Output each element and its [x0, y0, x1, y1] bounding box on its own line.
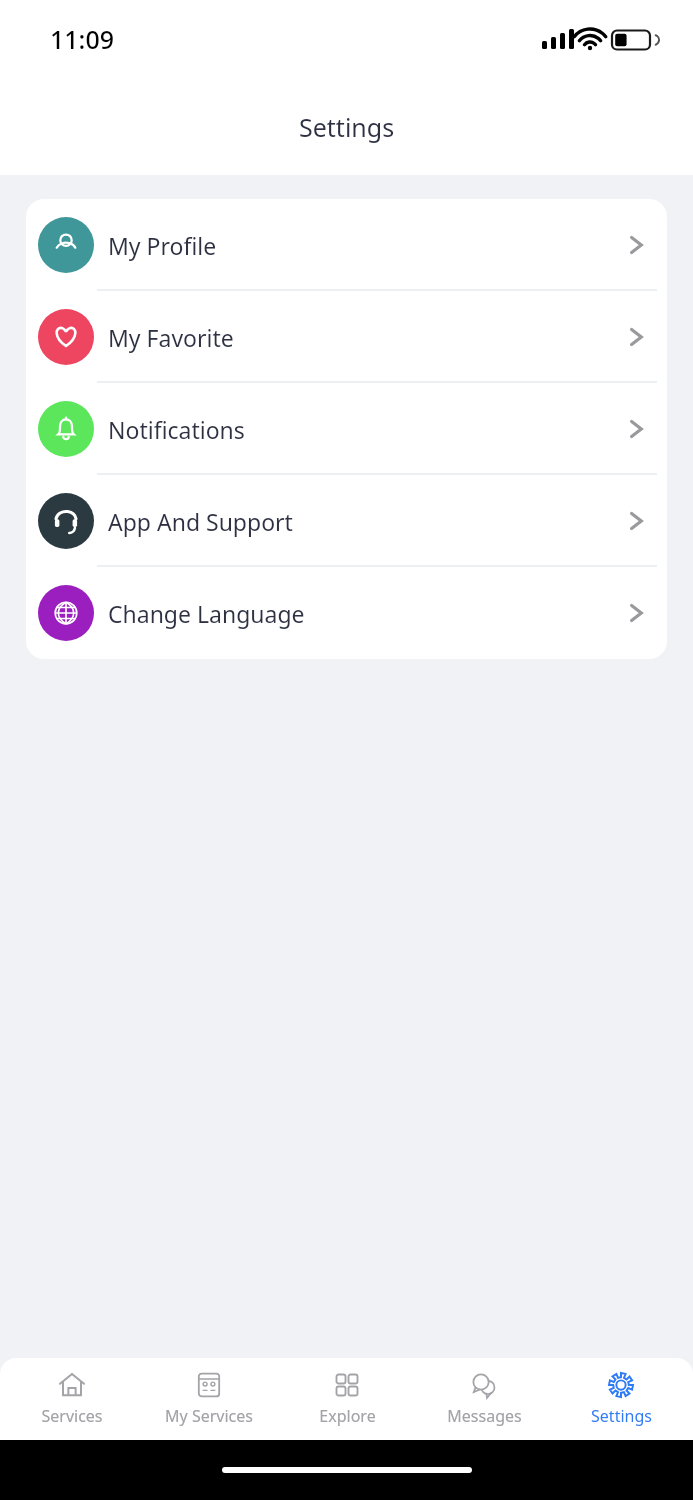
staticText: My Services	[165, 1405, 253, 1427]
button[interactable]: Settings	[556, 1358, 686, 1440]
staticText: Messages	[447, 1405, 522, 1427]
staticText: Notifications	[108, 414, 625, 445]
staticText: My Favorite	[108, 322, 625, 353]
staticText: Explore	[319, 1405, 376, 1427]
button[interactable]: Notifications	[26, 383, 667, 475]
button[interactable]: Change Language	[26, 567, 667, 659]
staticText: Change Language	[108, 598, 625, 629]
button[interactable]: My Profile	[26, 199, 667, 291]
staticText: Settings	[299, 110, 395, 144]
button[interactable]: Services	[7, 1358, 137, 1440]
button[interactable]: Messages	[419, 1358, 549, 1440]
button[interactable]: Explore	[282, 1358, 412, 1440]
button[interactable]: My Favorite	[26, 291, 667, 383]
staticText: Settings	[591, 1405, 652, 1427]
button[interactable]: App And Support	[26, 475, 667, 567]
staticText: Services	[41, 1405, 103, 1427]
staticText: App And Support	[108, 506, 625, 537]
staticText: 11:09	[50, 22, 115, 56]
button[interactable]: My Services	[144, 1358, 274, 1440]
staticText: My Profile	[108, 230, 625, 261]
